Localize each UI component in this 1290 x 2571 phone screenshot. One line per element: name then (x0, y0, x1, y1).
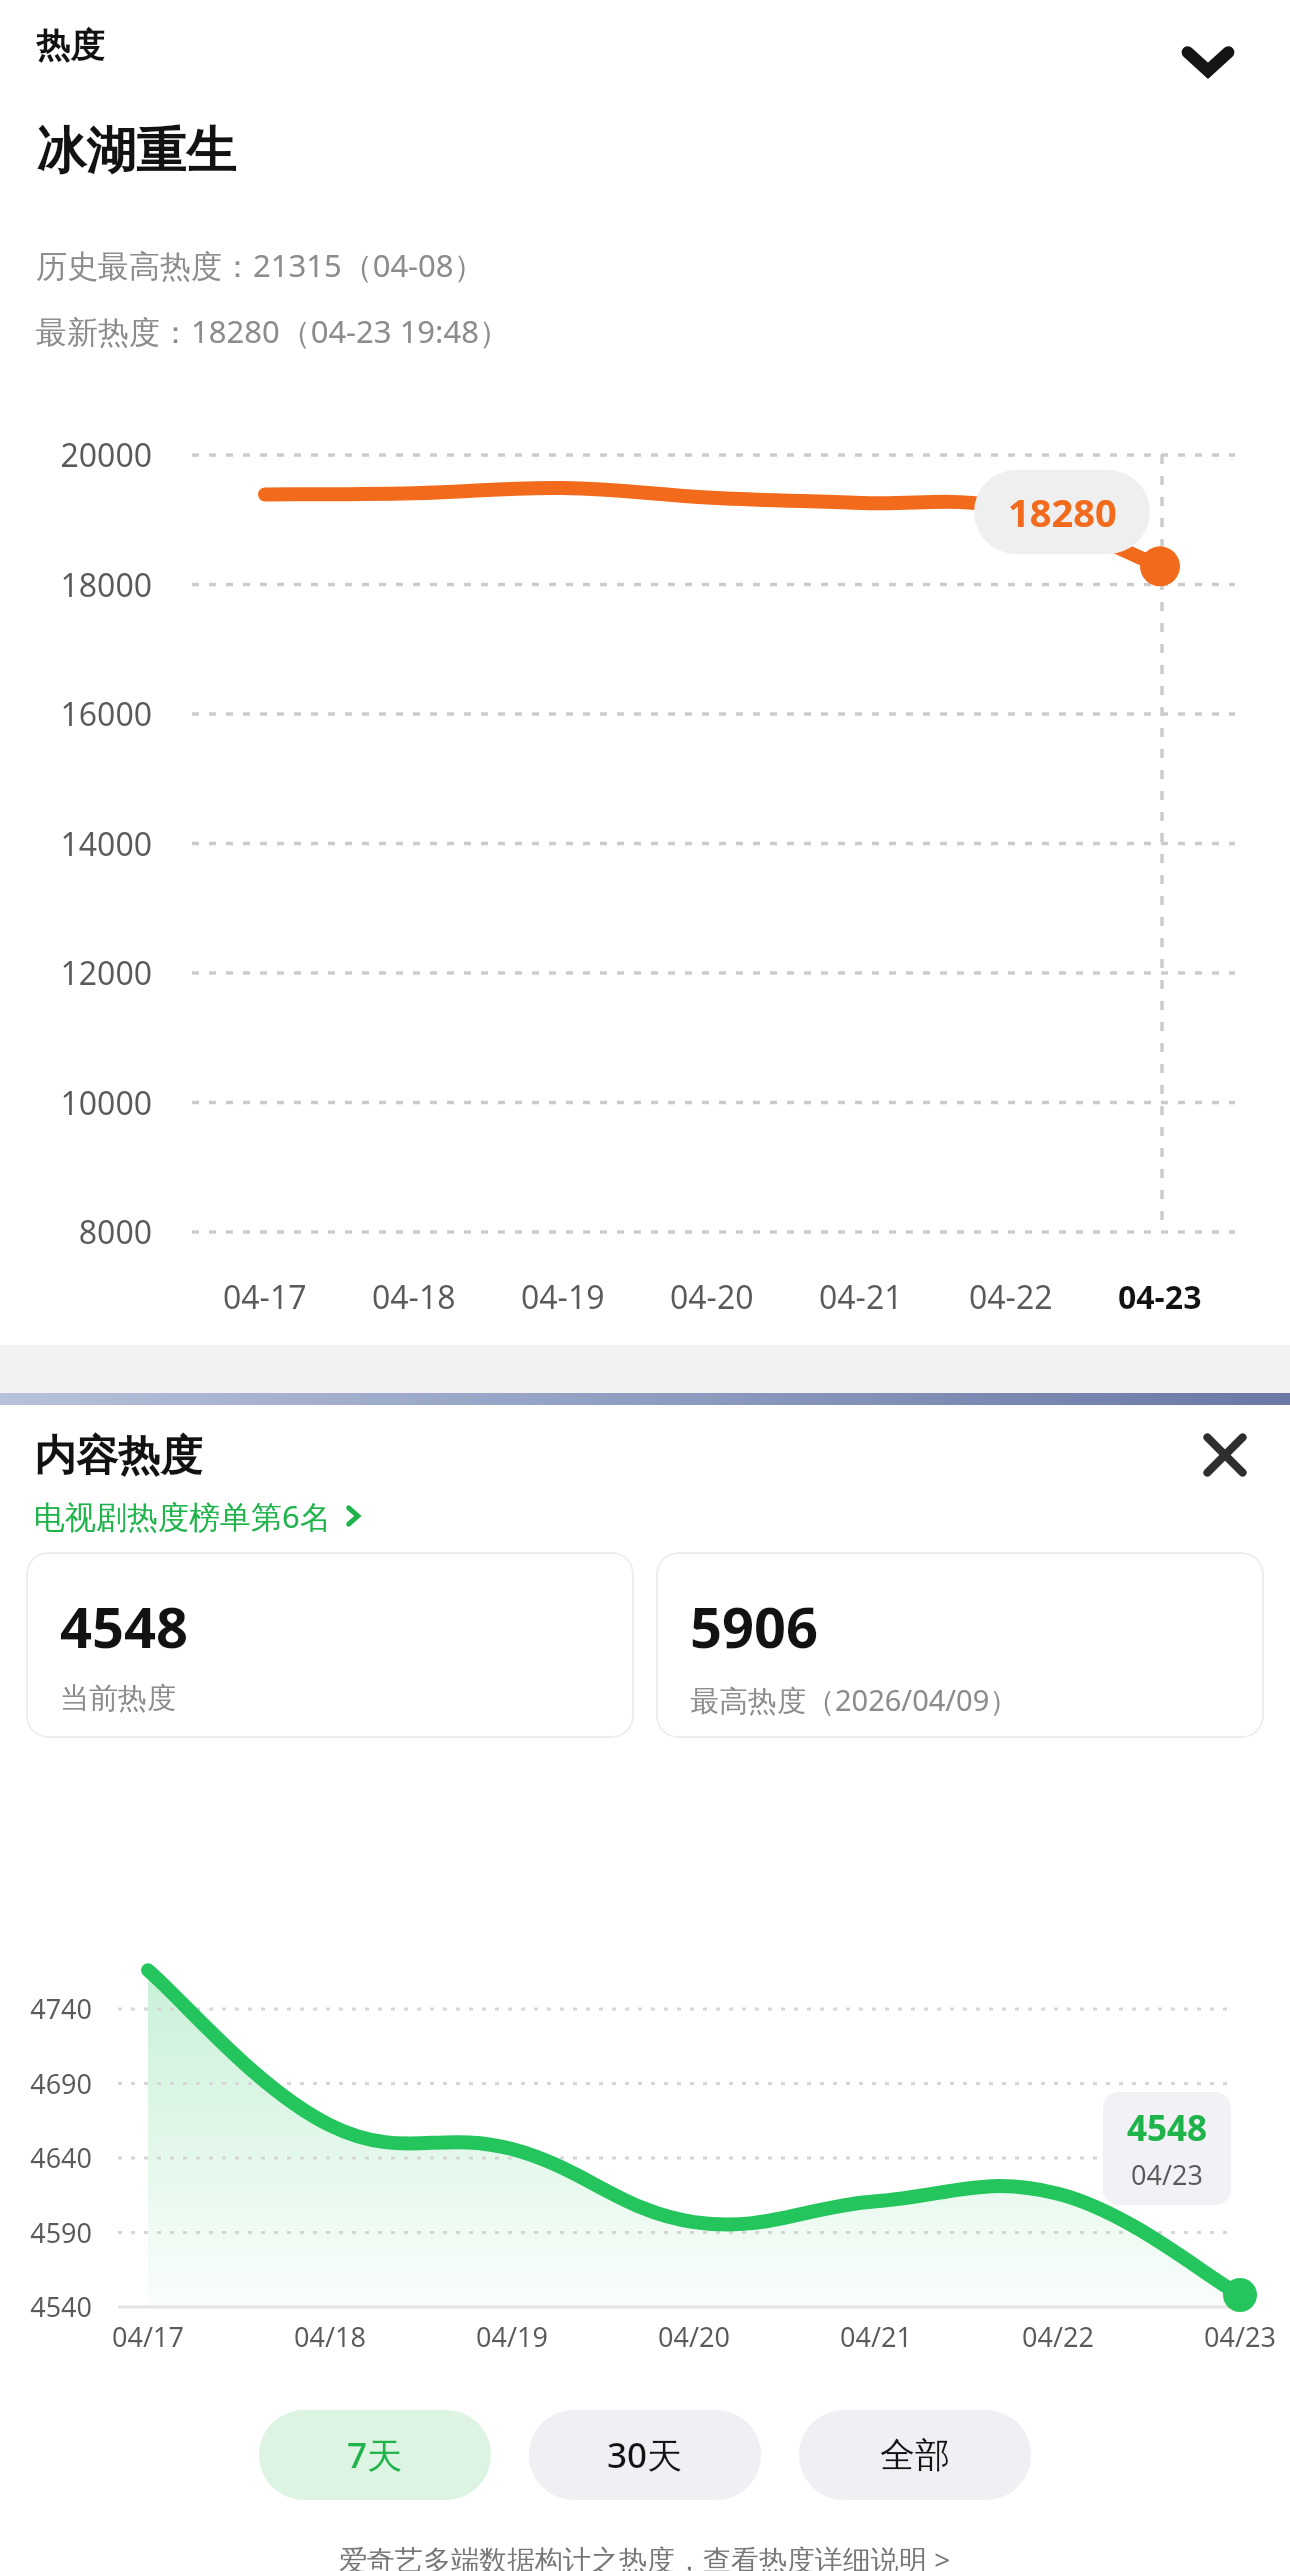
staticText: 04/19 (476, 2318, 548, 2355)
staticText: 7天 (347, 2431, 403, 2479)
staticText: 18000 (0, 563, 152, 607)
staticText: 4640 (0, 2139, 92, 2176)
button[interactable]: 5906 (656, 1552, 1264, 1738)
staticText: 20000 (0, 433, 152, 477)
button[interactable]: Close (1185, 1415, 1265, 1495)
staticText: 04/23 (1131, 2156, 1203, 2193)
button[interactable]: 全部 (799, 2410, 1031, 2500)
button[interactable]: 7天 (259, 2410, 491, 2500)
staticText: 04-20 (670, 1275, 754, 1319)
staticText: 04/20 (658, 2318, 730, 2355)
button[interactable]: 30天 (529, 2410, 761, 2500)
staticText: 30天 (607, 2431, 683, 2479)
staticText: 4740 (0, 1990, 92, 2027)
staticText: 04-23 (1118, 1275, 1202, 1319)
staticText: 04-18 (372, 1275, 456, 1319)
staticText: 热度 (36, 24, 104, 67)
staticText: 04-17 (223, 1275, 307, 1319)
staticText: 04/17 (112, 2318, 184, 2355)
staticText: 10000 (0, 1081, 152, 1125)
staticText: 12000 (0, 951, 152, 995)
staticText: 04/23 (1204, 2318, 1276, 2355)
staticText: 04/22 (1022, 2318, 1094, 2355)
staticText: 全部 (880, 2433, 950, 2477)
staticText: 4690 (0, 2065, 92, 2102)
staticText: 爱奇艺多端数据构计之热度，查看热度详细说明 > (339, 2540, 951, 2571)
staticText: 最新热度：18280（04-23 19:48） (36, 310, 510, 352)
staticText: 04/18 (294, 2318, 366, 2355)
staticText: 04-22 (969, 1275, 1053, 1319)
staticText: 04-19 (521, 1275, 605, 1319)
staticText: 18280 (1008, 486, 1117, 538)
button[interactable]: 电视剧热度榜单第6名 (34, 1495, 365, 1537)
staticText: 内容热度 (34, 1430, 202, 1483)
staticText: 04-21 (819, 1275, 903, 1319)
staticText: 4548 (1127, 2104, 1208, 2152)
staticText: 04/21 (840, 2318, 912, 2355)
staticText: 4548 (60, 1588, 189, 1664)
staticText: 4540 (0, 2288, 92, 2325)
staticText: 当前热度 (60, 1680, 176, 1717)
staticText: 电视剧热度榜单第6名 (34, 1495, 331, 1537)
staticText: 8000 (0, 1210, 152, 1254)
staticText: 4590 (0, 2214, 92, 2251)
staticText: 冰湖重生 (36, 120, 236, 183)
staticText: 历史最高热度：21315（04-08） (36, 244, 485, 286)
staticText: 16000 (0, 692, 152, 736)
button[interactable]: Collapse (1160, 12, 1256, 108)
staticText: 5906 (690, 1588, 819, 1664)
staticText: 14000 (0, 822, 152, 866)
staticText: 最高热度（2026/04/09） (690, 1680, 1019, 1720)
button[interactable]: 4548 (26, 1552, 634, 1738)
